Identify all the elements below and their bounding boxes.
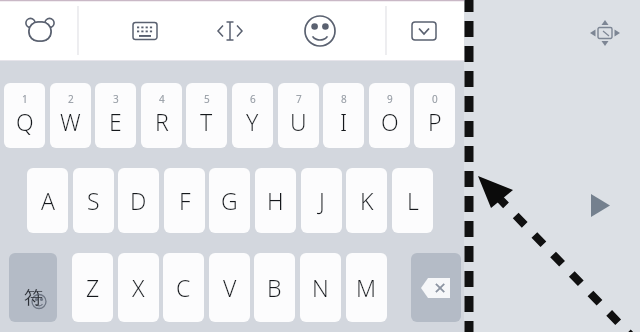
button[interactable]: Z [72, 253, 113, 322]
staticText: T [200, 106, 213, 137]
staticText: H [267, 185, 284, 216]
button[interactable]: C [163, 253, 204, 322]
staticText: K [360, 185, 374, 216]
staticText: P [428, 106, 442, 137]
button[interactable]: D [118, 168, 159, 233]
button[interactable]: M [346, 253, 387, 322]
button[interactable]: J [301, 168, 342, 233]
button[interactable]: Play [586, 192, 614, 220]
staticText: V [223, 272, 237, 303]
button[interactable]: 3 [95, 83, 136, 148]
button[interactable]: Symbols [9, 253, 57, 322]
button[interactable]: A [27, 168, 68, 233]
staticText: R [155, 106, 169, 137]
button[interactable]: L [392, 168, 433, 233]
staticText: S [87, 185, 100, 216]
button[interactable]: N [300, 253, 341, 322]
staticText: L [407, 185, 419, 216]
staticText: 6 [250, 92, 256, 106]
button[interactable]: Emoji [302, 13, 338, 49]
staticText: 8 [341, 92, 347, 106]
button[interactable]: Move cursor [212, 13, 248, 49]
staticText: B [267, 272, 282, 303]
staticText: M [356, 272, 377, 303]
button[interactable]: 1 [4, 83, 45, 148]
button[interactable]: Hide keyboard [406, 13, 442, 49]
button[interactable]: H [255, 168, 296, 233]
staticText: Y [246, 106, 259, 137]
button[interactable]: 2 [50, 83, 91, 148]
button[interactable]: 4 [141, 83, 182, 148]
button[interactable]: Baidu input [22, 12, 58, 48]
staticText: 0 [432, 92, 438, 106]
button[interactable]: Keyboard [127, 13, 163, 49]
staticText: D [130, 185, 147, 216]
button[interactable]: 0 [414, 83, 455, 148]
button[interactable]: G [209, 168, 250, 233]
button[interactable]: B [254, 253, 295, 322]
staticText: 7 [296, 92, 302, 106]
staticText: 1 [22, 92, 28, 106]
button[interactable]: F [164, 168, 205, 233]
staticText: W [60, 106, 81, 137]
button[interactable]: X [118, 253, 159, 322]
button[interactable]: K [346, 168, 387, 233]
button[interactable]: Move [588, 16, 622, 50]
staticText: 4 [159, 92, 165, 106]
staticText: 9 [387, 92, 393, 106]
button[interactable]: Backspace [411, 253, 461, 322]
staticText: U [290, 106, 307, 137]
button[interactable]: 5 [186, 83, 227, 148]
staticText: Q [16, 106, 34, 137]
staticText: 2 [68, 92, 74, 106]
staticText: F [179, 185, 191, 216]
staticText: N [312, 272, 329, 303]
staticText: G [221, 185, 238, 216]
staticText: I [340, 106, 348, 137]
button[interactable]: S [73, 168, 114, 233]
staticText: C [176, 272, 191, 303]
staticText: 3 [113, 92, 119, 106]
button[interactable]: 8 [323, 83, 364, 148]
button[interactable]: 6 [232, 83, 273, 148]
button[interactable]: V [209, 253, 250, 322]
staticText: A [41, 185, 55, 216]
staticText: 5 [204, 92, 210, 106]
staticText: O [381, 106, 399, 137]
staticText: J [319, 185, 325, 216]
staticText: X [132, 272, 145, 303]
staticText: 符 [24, 286, 43, 310]
staticText: Z [86, 272, 100, 303]
button[interactable]: 9 [369, 83, 410, 148]
button[interactable]: 7 [278, 83, 319, 148]
staticText: E [109, 106, 122, 137]
